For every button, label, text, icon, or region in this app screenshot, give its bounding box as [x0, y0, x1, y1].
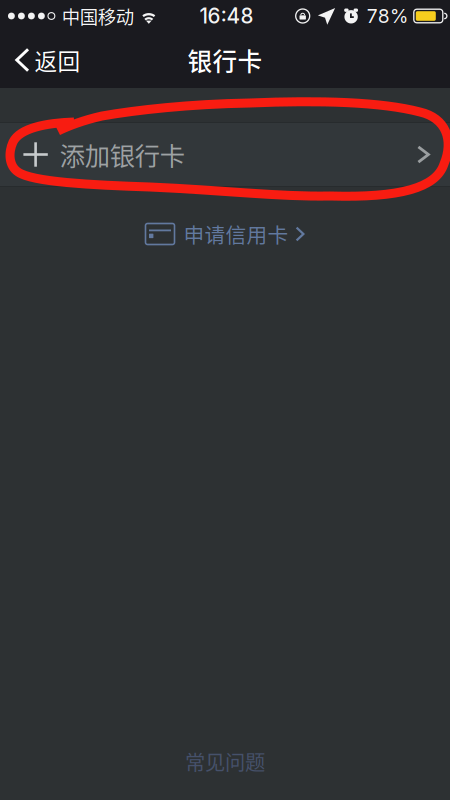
staticText: 银行卡	[187, 42, 262, 78]
button[interactable]: 常见问题	[169, 739, 281, 784]
staticText: 中国移动	[62, 3, 134, 29]
button[interactable]: 申请信用卡	[139, 217, 310, 251]
staticText: 返回	[34, 44, 80, 76]
staticText: 添加银行卡	[60, 136, 185, 173]
staticText: 申请信用卡	[183, 219, 288, 249]
button[interactable]: 返回	[0, 32, 94, 88]
staticText: 常见问题	[185, 747, 265, 776]
button[interactable]: 添加银行卡	[0, 122, 450, 187]
staticText: 78%	[367, 4, 409, 28]
staticText: 16:48	[199, 3, 253, 28]
